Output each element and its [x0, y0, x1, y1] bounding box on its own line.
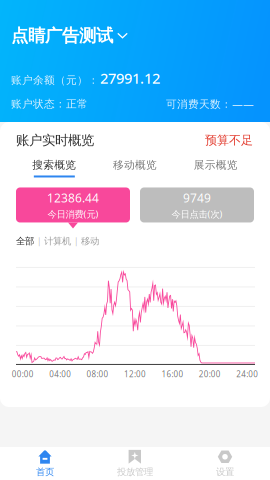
staticText: 12:00: [124, 369, 146, 379]
staticText: 今日消费(元): [47, 208, 98, 220]
staticText: 可消费天数：——: [166, 97, 254, 111]
staticText: 首页: [36, 466, 54, 478]
staticText: 移动: [81, 235, 99, 247]
staticText: 27991.12: [100, 68, 160, 88]
staticText: 设置: [216, 466, 234, 478]
staticText: 今日点击(次): [171, 208, 222, 220]
button[interactable]: 全部: [16, 235, 34, 247]
staticText: 账户状态：正常: [11, 97, 88, 110]
staticText: 24:00: [236, 369, 258, 379]
staticText: 04:00: [49, 369, 71, 379]
staticText: 移动概览: [113, 158, 157, 171]
button[interactable]: 搜索概览: [14, 158, 95, 177]
staticText: 展示概览: [194, 158, 238, 171]
button[interactable]: 投放管理: [90, 444, 180, 480]
staticText: 点睛广告测试: [11, 25, 113, 46]
staticText: 全部: [16, 235, 34, 247]
staticText: 9749: [183, 190, 211, 206]
staticText: 12386.44: [47, 190, 99, 206]
button[interactable]: 设置: [180, 444, 270, 480]
staticText: 20:00: [199, 369, 221, 379]
staticText: 计算机: [44, 235, 71, 247]
button[interactable]: 移动概览: [95, 158, 175, 177]
staticText: 16:00: [161, 369, 183, 379]
staticText: 账户余额（元）：: [11, 74, 99, 87]
staticText: 投放管理: [117, 466, 153, 478]
staticText: 预算不足: [205, 133, 253, 147]
button[interactable]: 展示概览: [175, 158, 256, 177]
staticText: |: [74, 236, 78, 246]
button[interactable]: 首页: [0, 444, 90, 480]
staticText: |: [37, 236, 41, 246]
staticText: 08:00: [87, 369, 109, 379]
staticText: 账户实时概览: [16, 132, 94, 148]
button[interactable]: 移动: [81, 235, 99, 247]
button[interactable]: 点睛广告测试: [11, 25, 128, 46]
button[interactable]: 计算机: [44, 235, 71, 247]
staticText: 搜索概览: [32, 158, 76, 171]
staticText: 00:00: [12, 369, 34, 379]
